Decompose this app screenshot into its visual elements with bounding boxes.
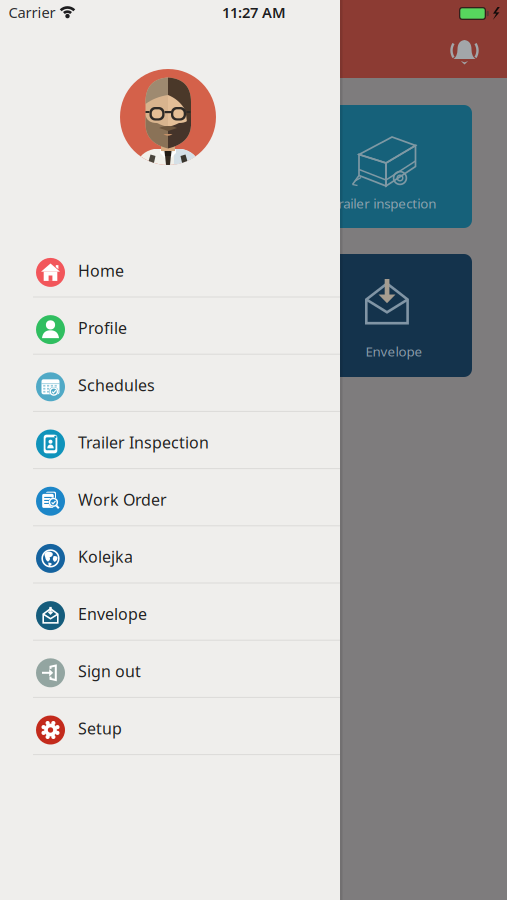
staticText: Trailer inspection — [331, 194, 436, 212]
staticText: Work Order — [78, 489, 167, 510]
button[interactable]: Kolejka — [0, 530, 340, 587]
button[interactable]: Notifications — [448, 35, 481, 68]
staticText: Setup — [78, 718, 122, 739]
button[interactable]: Work Order — [0, 473, 340, 530]
button[interactable]: Schedules — [0, 358, 340, 415]
staticText: Home — [78, 260, 124, 281]
button[interactable]: Envelope — [308, 254, 472, 377]
staticText: Trailer Inspection — [78, 432, 209, 453]
staticText: Profile — [78, 317, 127, 338]
staticText: Schedules — [78, 374, 155, 396]
staticText: 11:27 AM — [222, 2, 286, 22]
button[interactable]: Trailer inspection — [308, 105, 472, 228]
staticText: Kolejka — [78, 546, 133, 567]
button[interactable]: Profile — [0, 301, 340, 358]
staticText: Envelope — [365, 342, 422, 360]
button[interactable]: Envelope — [0, 587, 340, 644]
staticText: Envelope — [78, 603, 147, 624]
staticText: Carrier — [8, 3, 55, 22]
button[interactable]: Home — [0, 244, 340, 301]
staticText: Sign out — [78, 660, 141, 682]
button[interactable]: Setup — [0, 701, 340, 759]
button[interactable]: Trailer Inspection — [0, 415, 340, 473]
button[interactable]: Sign out — [0, 644, 340, 701]
